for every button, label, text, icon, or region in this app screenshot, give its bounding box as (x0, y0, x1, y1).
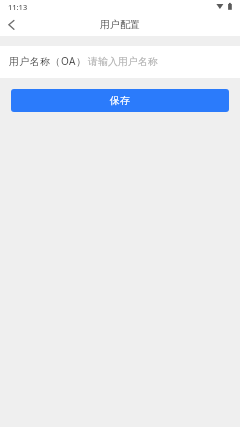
button[interactable]: Back (0, 14, 24, 36)
staticText: 用户名称（OA） (9, 54, 87, 68)
staticText: 用户配置 (100, 18, 140, 31)
button[interactable]: 用户名称（OA） (0, 46, 240, 78)
staticText: 保存 (110, 94, 130, 107)
button[interactable]: 保存 (11, 89, 229, 112)
staticText: 请输入用户名称 (88, 55, 158, 68)
staticText: 11:13 (8, 2, 28, 12)
